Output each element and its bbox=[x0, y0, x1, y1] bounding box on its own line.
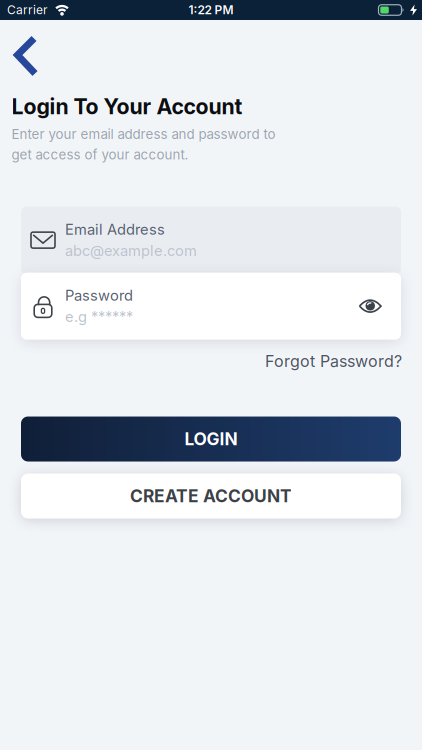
staticText: Forgot Password? bbox=[265, 352, 402, 370]
button[interactable]: Show Password bbox=[351, 292, 389, 321]
button[interactable]: Password bbox=[21, 273, 401, 340]
staticText: Email Address bbox=[65, 221, 165, 238]
button[interactable]: LOGIN bbox=[21, 416, 401, 461]
button[interactable]: Email Address bbox=[21, 207, 401, 274]
button[interactable]: Back bbox=[14, 36, 38, 76]
staticText: abc@example.com bbox=[65, 242, 197, 259]
staticText: 1:22 PM bbox=[188, 3, 233, 17]
staticText: Enter your email address and password to… bbox=[11, 126, 275, 163]
staticText: e.g ****** bbox=[65, 308, 133, 325]
staticText: CREATE ACCOUNT bbox=[130, 486, 292, 506]
staticText: LOGIN bbox=[184, 429, 237, 449]
staticText: Password bbox=[65, 287, 133, 304]
staticText: Login To Your Account bbox=[11, 94, 242, 119]
button[interactable]: Forgot Password? bbox=[265, 352, 402, 370]
staticText: Carrier bbox=[7, 3, 48, 17]
button[interactable]: CREATE ACCOUNT bbox=[21, 473, 401, 518]
